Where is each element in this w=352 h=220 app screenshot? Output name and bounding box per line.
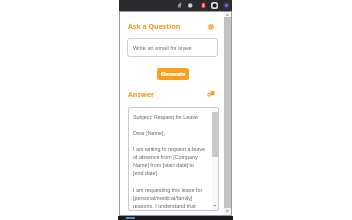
button[interactable]: Settings (206, 22, 216, 32)
button[interactable]: Write an email for leave (127, 38, 218, 57)
button[interactable]: Bookmark (186, 1, 194, 9)
button[interactable]: Copy answer (205, 87, 217, 99)
button[interactable]: Extensions (176, 1, 184, 9)
staticText: Ask a Question (128, 22, 181, 32)
staticText: [personal/medical/family] (133, 195, 193, 201)
staticText: Name] from [start date] to (133, 162, 195, 168)
staticText: reasons. I understand that (133, 203, 196, 209)
staticText: Write an email for leave (133, 45, 192, 51)
staticText: [end date]. (133, 170, 159, 176)
staticText: of absence from [Company (133, 154, 198, 160)
staticText: I am writing to request a leave (133, 146, 205, 152)
staticText: Generate (161, 71, 186, 77)
staticText: I am requesting this leave for (133, 187, 203, 193)
button[interactable]: Extension (211, 2, 218, 9)
staticText: Answer (128, 90, 155, 100)
staticText: Dear [Name], (133, 130, 166, 136)
staticText: Subject: Request for Leave (133, 114, 199, 120)
button[interactable]: Profile (223, 2, 230, 9)
button[interactable]: Extension (200, 2, 207, 9)
button[interactable]: Generate (157, 68, 189, 80)
